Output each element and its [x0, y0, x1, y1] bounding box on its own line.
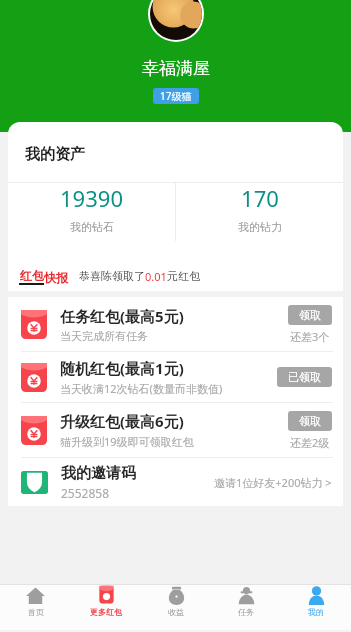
button[interactable]: 收益 — [141, 585, 211, 617]
staticText: 0.01 — [145, 269, 167, 284]
button[interactable]: 19390 — [8, 183, 175, 234]
button[interactable]: 已领取 — [277, 367, 332, 387]
staticText: 我的 — [308, 607, 324, 617]
staticText: 170 — [241, 183, 279, 213]
staticText: 还差3个 — [290, 329, 330, 344]
staticText: 任务红包(最高5元) — [60, 306, 184, 326]
staticText: 幸福满屋 — [142, 58, 210, 79]
button[interactable]: 任务红包(最高5元) — [8, 297, 343, 351]
staticText: 我的资产 — [25, 145, 85, 164]
button[interactable]: 首页 — [0, 585, 71, 617]
staticText: 元红包 — [167, 269, 200, 283]
button[interactable]: 红包 — [8, 261, 343, 291]
staticText: 19390 — [60, 183, 123, 213]
button[interactable]: 升级红包(最高6元) — [8, 403, 343, 457]
staticText: 当天收满12次钻石(数量而非数值) — [60, 381, 223, 396]
button[interactable]: 17级猫 — [153, 88, 199, 104]
staticText: 我的邀请码 — [61, 464, 136, 483]
staticText: 收益 — [168, 607, 184, 617]
staticText: 我的钻石 — [70, 220, 114, 234]
staticText: 任务 — [238, 607, 254, 617]
staticText: 升级红包(最高6元) — [60, 411, 184, 431]
staticText: 还差2级 — [290, 435, 330, 450]
staticText: 邀请1位好友+200钻力 > — [214, 475, 332, 490]
button[interactable]: 领取 — [288, 305, 332, 325]
staticText: 我的钻力 — [238, 220, 282, 234]
button[interactable]: 任务 — [211, 585, 281, 617]
staticText: 已领取 — [288, 370, 321, 384]
button[interactable]: 随机红包(最高1元) — [8, 352, 343, 402]
staticText: 2552858 — [61, 485, 110, 501]
button[interactable]: 170 — [176, 183, 343, 234]
button[interactable]: 我的 — [281, 585, 351, 617]
staticText: 领取 — [299, 414, 321, 428]
staticText: 首页 — [28, 607, 44, 617]
staticText: 快报 — [44, 270, 68, 285]
button[interactable]: 领取 — [288, 411, 332, 431]
staticText: 当天完成所有任务 — [60, 329, 148, 343]
staticText: 更多红包 — [90, 607, 122, 617]
staticText: 17级猫 — [160, 89, 192, 103]
button[interactable]: 更多红包 — [71, 585, 141, 617]
staticText: 随机红包(最高1元) — [60, 358, 184, 378]
staticText: 恭喜陈领取了 — [79, 269, 145, 283]
staticText: 猫升级到19级即可领取红包 — [60, 434, 194, 449]
staticText: 红包 — [20, 268, 44, 283]
button[interactable]: Avatar — [150, 0, 202, 40]
staticText: 领取 — [299, 308, 321, 322]
button[interactable]: 我的邀请码 — [8, 458, 343, 506]
